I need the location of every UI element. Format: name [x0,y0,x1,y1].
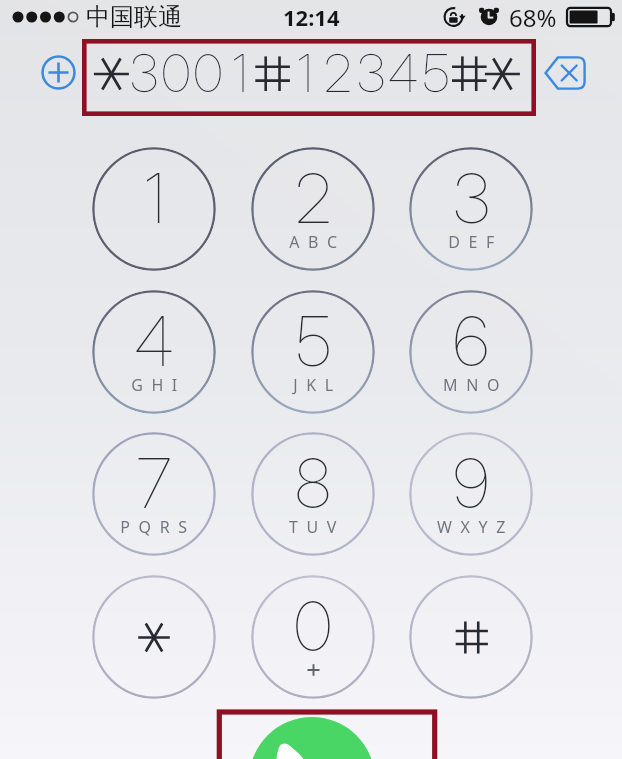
button[interactable]: Dial 7 [92,432,216,556]
staticText: 中国联通 [86,2,182,32]
button[interactable]: Dial 6 [409,290,533,414]
staticText: 68% [509,1,557,34]
button[interactable]: Dial # [409,575,533,699]
button[interactable]: Dial 0 [251,575,375,699]
staticText: 0 [188,42,228,105]
staticText: 3 [453,157,490,239]
staticText: 1 [144,157,165,239]
staticText: MNO [443,374,508,396]
staticText: 9 [453,442,489,524]
staticText: JKL [293,374,342,396]
staticText: 3 [124,42,164,105]
staticText: 4 [134,300,174,382]
staticText: 1 [220,42,260,105]
button[interactable]: Dial 9 [409,432,533,556]
button[interactable]: Dial 8 [251,432,375,556]
staticText: 2 [295,157,332,239]
staticText: 5 [416,42,456,105]
staticText: 4 [383,42,423,105]
button[interactable]: Dial 2 [251,147,375,271]
button[interactable]: Dial 3 [409,147,533,271]
button[interactable]: Add contact [41,55,76,90]
staticText: ABC [289,231,346,253]
button[interactable]: Dial 5 [251,290,375,414]
button[interactable]: Dial * [92,575,216,699]
staticText: WXYZ [437,516,514,538]
staticText: 5 [296,300,331,382]
staticText: 2 [318,42,358,105]
button[interactable]: Call [249,717,375,759]
button[interactable]: Dial 4 [92,290,216,414]
staticText: PQRS [120,516,196,538]
staticText: 12:14 [283,2,340,32]
staticText: GHI [131,374,186,396]
staticText: 6 [453,300,489,382]
button[interactable]: Backspace [542,50,588,96]
staticText: 7 [136,442,172,524]
button[interactable]: Dial 1 [92,147,216,271]
staticText: DEF [448,231,503,253]
staticText: 8 [295,442,331,524]
staticText: 0 [156,42,196,105]
staticText: TUV [289,516,345,538]
staticText: 3 [351,42,391,105]
staticText: 1 [285,42,325,105]
staticText: 0 [294,585,332,667]
